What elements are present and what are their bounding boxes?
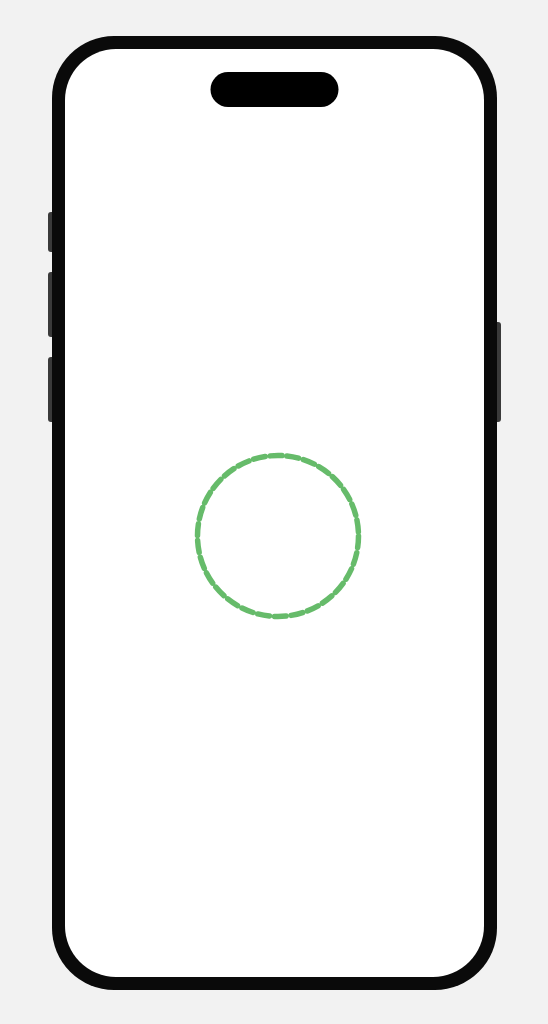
- button[interactable]: Phone mockup with dashed circle: [0, 0, 548, 1024]
